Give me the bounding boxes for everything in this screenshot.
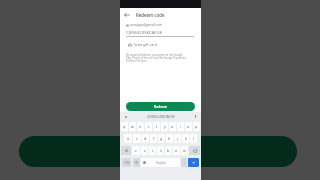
button[interactable]: Dismiss suggestion	[120, 112, 131, 121]
button[interactable]: Scan gift card	[128, 42, 201, 47]
staticText: CJVS6VLXSKCAFUK	[147, 115, 175, 119]
staticText: k	[185, 136, 187, 141]
button[interactable]: Voice input	[190, 112, 201, 121]
button[interactable]: q	[121, 122, 128, 131]
button[interactable]: x	[141, 146, 148, 155]
staticText: w	[131, 124, 134, 129]
button[interactable]: m	[181, 146, 188, 155]
button[interactable]: w	[129, 122, 136, 131]
staticText: r	[148, 124, 150, 129]
staticText: CJVS6VLXSKCAFUK	[126, 30, 163, 36]
button[interactable]: z	[132, 146, 140, 155]
staticText: By tapping Redeem, you agree to the Goog…	[126, 53, 186, 63]
staticText: c	[152, 148, 154, 153]
button[interactable]: t	[153, 122, 160, 131]
staticText: q	[123, 124, 126, 129]
staticText: j	[177, 136, 178, 141]
button[interactable]: Shift	[121, 146, 131, 155]
staticText: f	[153, 136, 155, 141]
staticText: a	[127, 136, 130, 141]
button[interactable]: j	[174, 134, 181, 143]
staticText: e	[139, 124, 142, 129]
staticText: d	[144, 136, 147, 141]
staticText: m	[183, 148, 187, 153]
staticText: munjapp@gmail.com	[130, 23, 162, 27]
staticText: b	[167, 148, 170, 153]
staticText: i	[180, 124, 181, 129]
button[interactable]: e	[137, 122, 144, 131]
button[interactable]: r	[145, 122, 152, 131]
button[interactable]: s	[133, 134, 141, 143]
staticText: p	[195, 124, 198, 129]
button[interactable]: d	[142, 134, 149, 143]
staticText: x	[144, 148, 146, 153]
staticText: h	[168, 136, 171, 141]
button[interactable]: n	[173, 146, 180, 155]
staticText: o	[187, 124, 190, 129]
button[interactable]: p	[193, 122, 200, 131]
staticText: English	[156, 161, 166, 165]
button[interactable]: Emoji	[133, 158, 140, 167]
button[interactable]: u	[169, 122, 176, 131]
button[interactable]: h	[166, 134, 173, 143]
button[interactable]: a	[124, 134, 132, 143]
button[interactable]: b	[165, 146, 172, 155]
button[interactable]: c	[149, 146, 156, 155]
button[interactable]: y	[161, 122, 168, 131]
staticText: l	[193, 136, 194, 141]
button[interactable]: Backspace	[189, 146, 200, 155]
staticText: n	[175, 148, 178, 153]
staticText: Redeem	[154, 104, 168, 109]
button[interactable]: v	[157, 146, 164, 155]
button[interactable]: o	[185, 122, 192, 131]
button[interactable]: English	[141, 158, 180, 167]
staticText: Redeem code	[136, 12, 165, 18]
button[interactable]: g	[158, 134, 165, 143]
staticText: y	[164, 124, 166, 129]
staticText: g	[160, 136, 163, 141]
staticText: z	[135, 148, 137, 153]
button[interactable]: Enter	[188, 158, 199, 167]
staticText: ?123	[124, 161, 130, 165]
button[interactable]: Back	[122, 10, 131, 19]
staticText: v	[160, 148, 162, 153]
button[interactable]: l	[190, 134, 197, 143]
staticText: t	[156, 124, 158, 129]
staticText: Scan gift card	[134, 42, 157, 47]
staticText: s	[136, 136, 138, 141]
staticText: .	[184, 160, 185, 165]
button[interactable]: ?123	[122, 158, 131, 167]
button[interactable]: Redeem	[126, 102, 195, 111]
staticText: u	[171, 124, 174, 129]
button[interactable]: k	[182, 134, 189, 143]
button[interactable]: i	[177, 122, 184, 131]
button[interactable]: f	[150, 134, 157, 143]
